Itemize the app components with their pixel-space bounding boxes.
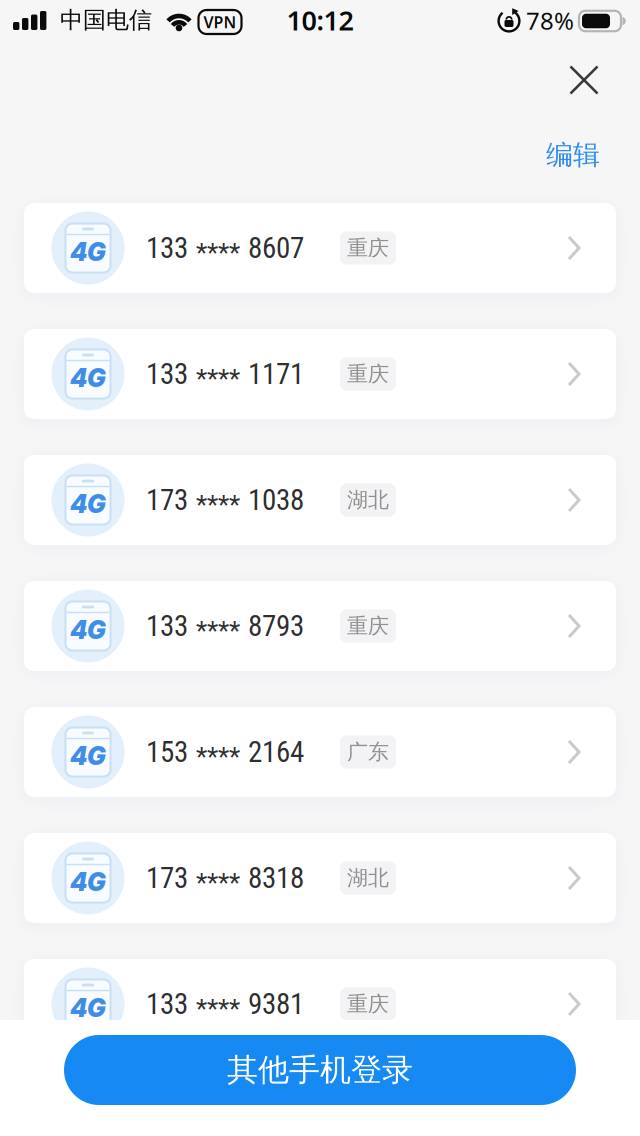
staticText: 8793 bbox=[248, 609, 304, 643]
staticText: 9381 bbox=[248, 987, 304, 1021]
staticText: 编辑 bbox=[546, 138, 600, 172]
staticText: **** bbox=[196, 742, 240, 772]
staticText: **** bbox=[196, 364, 240, 394]
staticText: 10:12 bbox=[286, 2, 353, 38]
staticText: 133 bbox=[146, 231, 188, 265]
staticText: 133 bbox=[146, 357, 188, 391]
staticText: **** bbox=[196, 994, 240, 1024]
staticText: 8318 bbox=[248, 861, 304, 895]
staticText: 中国电信 bbox=[60, 5, 152, 34]
staticText: **** bbox=[196, 238, 240, 268]
button[interactable]: 其他手机登录 bbox=[64, 1035, 576, 1105]
button[interactable]: 4G bbox=[24, 581, 616, 671]
staticText: 4G bbox=[70, 237, 106, 267]
staticText: 1171 bbox=[248, 357, 304, 391]
button[interactable]: 4G bbox=[24, 455, 616, 545]
staticText: 78% bbox=[526, 4, 574, 37]
button[interactable]: 4G bbox=[24, 329, 616, 419]
staticText: 173 bbox=[146, 483, 188, 517]
staticText: 湖北 bbox=[347, 865, 389, 891]
staticText: 1038 bbox=[248, 483, 304, 517]
staticText: 湖北 bbox=[347, 487, 389, 513]
staticText: 重庆 bbox=[347, 235, 389, 261]
staticText: 4G bbox=[70, 993, 106, 1023]
staticText: 8607 bbox=[248, 231, 304, 265]
button[interactable]: 4G bbox=[24, 203, 616, 293]
button[interactable]: 编辑 bbox=[540, 134, 606, 176]
staticText: **** bbox=[196, 490, 240, 520]
staticText: 133 bbox=[146, 987, 188, 1021]
staticText: 广东 bbox=[347, 739, 389, 765]
button[interactable]: 关闭 bbox=[560, 56, 607, 103]
staticText: 133 bbox=[146, 609, 188, 643]
staticText: 4G bbox=[70, 363, 106, 393]
staticText: 4G bbox=[70, 867, 106, 897]
staticText: 153 bbox=[146, 735, 188, 769]
staticText: 4G bbox=[70, 489, 106, 519]
staticText: 重庆 bbox=[347, 613, 389, 639]
button[interactable]: 4G bbox=[24, 959, 616, 1049]
staticText: VPN bbox=[203, 11, 236, 33]
staticText: 2164 bbox=[248, 735, 304, 769]
staticText: 4G bbox=[70, 615, 106, 645]
button[interactable]: 4G bbox=[24, 833, 616, 923]
staticText: 重庆 bbox=[347, 991, 389, 1017]
staticText: 重庆 bbox=[347, 361, 389, 387]
staticText: 其他手机登录 bbox=[227, 1050, 413, 1090]
staticText: 4G bbox=[70, 741, 106, 771]
button[interactable]: 4G bbox=[24, 707, 616, 797]
staticText: **** bbox=[196, 868, 240, 898]
staticText: 173 bbox=[146, 861, 188, 895]
staticText: **** bbox=[196, 616, 240, 646]
